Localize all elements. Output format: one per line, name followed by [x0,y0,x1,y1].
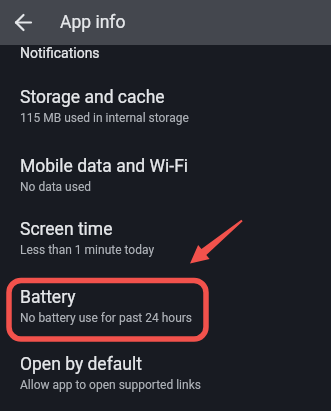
staticText: No data used [20,180,92,194]
staticText: App info [60,12,126,33]
button[interactable]: Screen time [0,213,331,275]
button[interactable]: Storage and cache [0,81,331,143]
staticText: Battery [20,287,76,308]
staticText: Less than 1 minute today [20,243,155,257]
button[interactable]: Open by default [0,348,331,410]
button[interactable]: Mobile data and Wi-Fi [0,150,331,212]
staticText: Mobile data and Wi-Fi [20,156,189,177]
staticText: Allow app to open supported links [20,378,201,392]
staticText: No battery use for past 24 hours [20,311,193,325]
staticText: Notifications [20,45,100,61]
button[interactable] [0,0,46,45]
staticText: Open by default [20,354,142,375]
staticText: Storage and cache [20,87,165,108]
button[interactable]: Battery [0,281,331,343]
staticText: 115 MB used in internal storage [20,111,189,125]
staticText: Screen time [20,219,113,240]
button[interactable]: Notifications [0,39,331,67]
